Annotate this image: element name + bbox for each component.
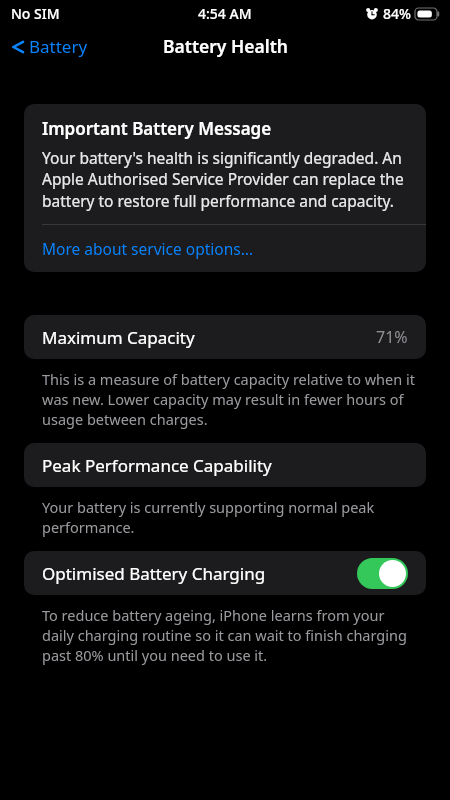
staticText: 84% [383,4,411,23]
staticText: Your battery's health is significantly d… [42,147,408,212]
staticText: Important Battery Message [42,117,272,140]
button[interactable]: Back [0,31,98,62]
button[interactable]: Peak Performance Capability [24,443,426,487]
button[interactable]: Optimised Battery Charging toggle [357,558,408,589]
staticText: Battery Health [163,34,288,58]
staticText: Battery [29,35,88,58]
button[interactable]: More about service options… [24,225,426,272]
staticText: More about service options… [42,238,253,259]
button[interactable]: Maximum Capacity [24,315,426,359]
button[interactable]: Optimised Battery Charging [24,551,426,595]
staticText: Your battery is currently supporting nor… [42,497,416,537]
staticText: This is a measure of battery capacity re… [42,369,416,429]
staticText: Maximum Capacity [42,326,195,349]
staticText: Optimised Battery Charging [42,562,266,585]
staticText: No SIM [11,4,60,23]
staticText: 4:54 AM [198,4,252,23]
staticText: To reduce battery ageing, iPhone learns … [42,605,416,665]
staticText: 71% [376,326,408,348]
staticText: Peak Performance Capability [42,454,272,477]
other: Back [12,37,24,57]
